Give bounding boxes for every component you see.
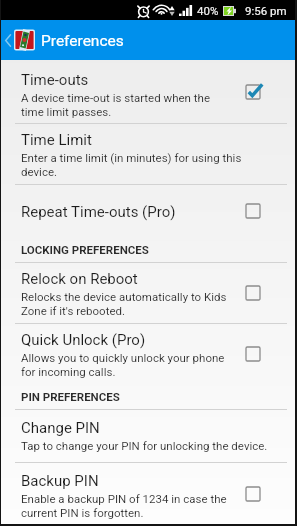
button[interactable]: Change PIN — [1, 410, 295, 462]
staticText: Time Limit — [21, 131, 92, 149]
staticText: Quick Unlock (Pro) — [21, 331, 146, 349]
staticText: 9:56 pm — [245, 4, 287, 17]
button[interactable]: Backup PIN — [1, 463, 295, 524]
staticText: A device time-out is started when the ti… — [21, 91, 232, 119]
button[interactable]: Navigate up — [1, 25, 14, 55]
button[interactable]: Time-outs — [1, 60, 295, 123]
staticText: Enter a time limit (in minutes) for usin… — [21, 151, 251, 179]
staticText: Repeat Time-outs (Pro) — [21, 203, 176, 221]
staticText: Preferences — [41, 32, 124, 50]
button[interactable]: Quick Unlock (Pro) — [1, 324, 295, 384]
staticText: Allows you to quickly unlock your phone … — [21, 351, 229, 379]
staticText: 40% — [197, 4, 219, 17]
button[interactable]: Time Limit — [1, 124, 295, 184]
staticText: Time-outs — [21, 71, 89, 89]
staticText: Enable a backup PIN of 1234 in case the … — [21, 492, 248, 520]
button[interactable]: Repeat Time-outs (Pro) — [1, 185, 295, 237]
staticText: Change PIN — [21, 419, 100, 437]
other: App icon — [14, 29, 35, 51]
staticText: PIN PREFERENCES — [21, 390, 120, 403]
staticText: LOCKING PREFERENCES — [21, 243, 149, 256]
staticText: Relocks the device automatically to Kids… — [21, 290, 248, 318]
staticText: Tap to change your PIN for unlocking the… — [21, 439, 276, 452]
staticText: Relock on Reboot — [21, 270, 138, 288]
button[interactable]: Relock on Reboot — [1, 263, 295, 323]
staticText: Backup PIN — [21, 472, 99, 490]
